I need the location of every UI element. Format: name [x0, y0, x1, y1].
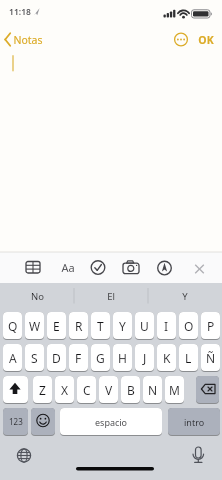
staticText: V	[105, 382, 113, 398]
staticText: J	[143, 350, 147, 366]
staticText: Y	[119, 318, 126, 334]
staticText: B	[127, 382, 135, 398]
staticText: T	[97, 318, 104, 334]
staticText: C	[83, 382, 91, 398]
staticText: O	[184, 318, 194, 334]
staticText: Q	[8, 318, 18, 334]
staticText: Z	[39, 382, 46, 398]
staticText: E	[53, 318, 60, 334]
staticText: X	[61, 382, 69, 398]
staticText: S	[31, 350, 38, 366]
staticText: L	[185, 350, 192, 366]
staticText: Ñ	[206, 350, 216, 366]
staticText: espacio	[95, 416, 128, 428]
staticText: Y	[182, 290, 188, 303]
staticText: Notas	[13, 33, 43, 47]
staticText: W	[29, 318, 41, 334]
staticText: 11:18	[9, 6, 31, 18]
staticText: El	[107, 290, 115, 303]
staticText: M	[169, 382, 180, 398]
staticText: R	[75, 318, 83, 334]
staticText: P	[207, 318, 215, 334]
staticText: OK	[198, 33, 214, 47]
staticText: intro	[184, 416, 205, 428]
staticText: D	[52, 350, 61, 366]
staticText: U	[140, 318, 149, 334]
staticText: 123	[9, 416, 23, 427]
staticText: N	[148, 382, 158, 398]
staticText: K	[163, 350, 171, 366]
staticText: No	[31, 290, 44, 303]
staticText: H	[118, 350, 127, 366]
staticText: I	[164, 318, 169, 334]
staticText: Aa	[61, 260, 75, 275]
staticText: F	[75, 350, 82, 366]
staticText: G	[96, 350, 105, 366]
staticText: A	[9, 350, 17, 366]
